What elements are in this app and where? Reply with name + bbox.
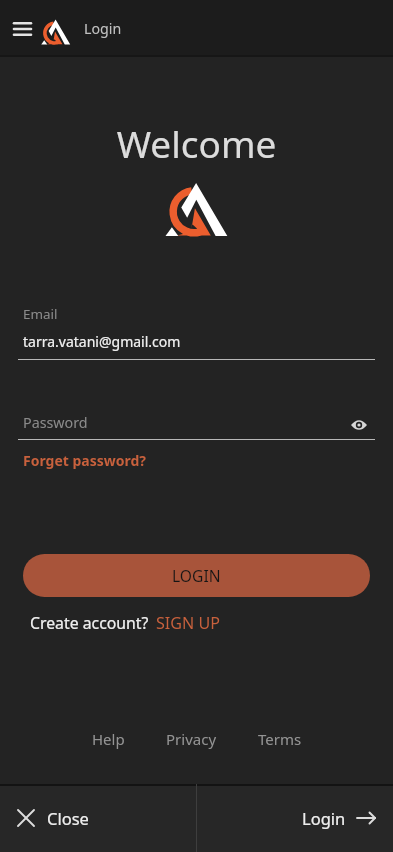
button[interactable]: SIGN UP — [156, 612, 220, 634]
staticText: Password — [23, 413, 347, 432]
button[interactable]: Terms — [256, 725, 304, 753]
staticText: LOGIN — [172, 565, 221, 586]
button[interactable]: Show password — [345, 414, 373, 436]
staticText: Privacy — [166, 729, 217, 749]
staticText: Login — [302, 807, 346, 829]
button[interactable]: LOGIN — [23, 554, 370, 597]
staticText: Close — [47, 807, 89, 829]
button[interactable]: Help — [90, 725, 127, 753]
button[interactable]: Close — [0, 784, 196, 852]
staticText: tarra.vatani@gmail.com — [23, 332, 181, 351]
button[interactable]: Open navigation menu — [2, 13, 42, 45]
staticText: Email — [23, 305, 58, 323]
button[interactable]: Privacy — [164, 725, 219, 753]
button[interactable]: Forget password? — [23, 451, 147, 470]
button[interactable]: Login — [196, 784, 393, 852]
staticText: Create account? — [30, 612, 149, 634]
staticText: Help — [92, 729, 125, 749]
staticText: Welcome — [0, 118, 393, 168]
staticText: Terms — [258, 729, 302, 749]
button[interactable]: Email — [18, 305, 375, 360]
staticText: Login — [84, 19, 122, 38]
